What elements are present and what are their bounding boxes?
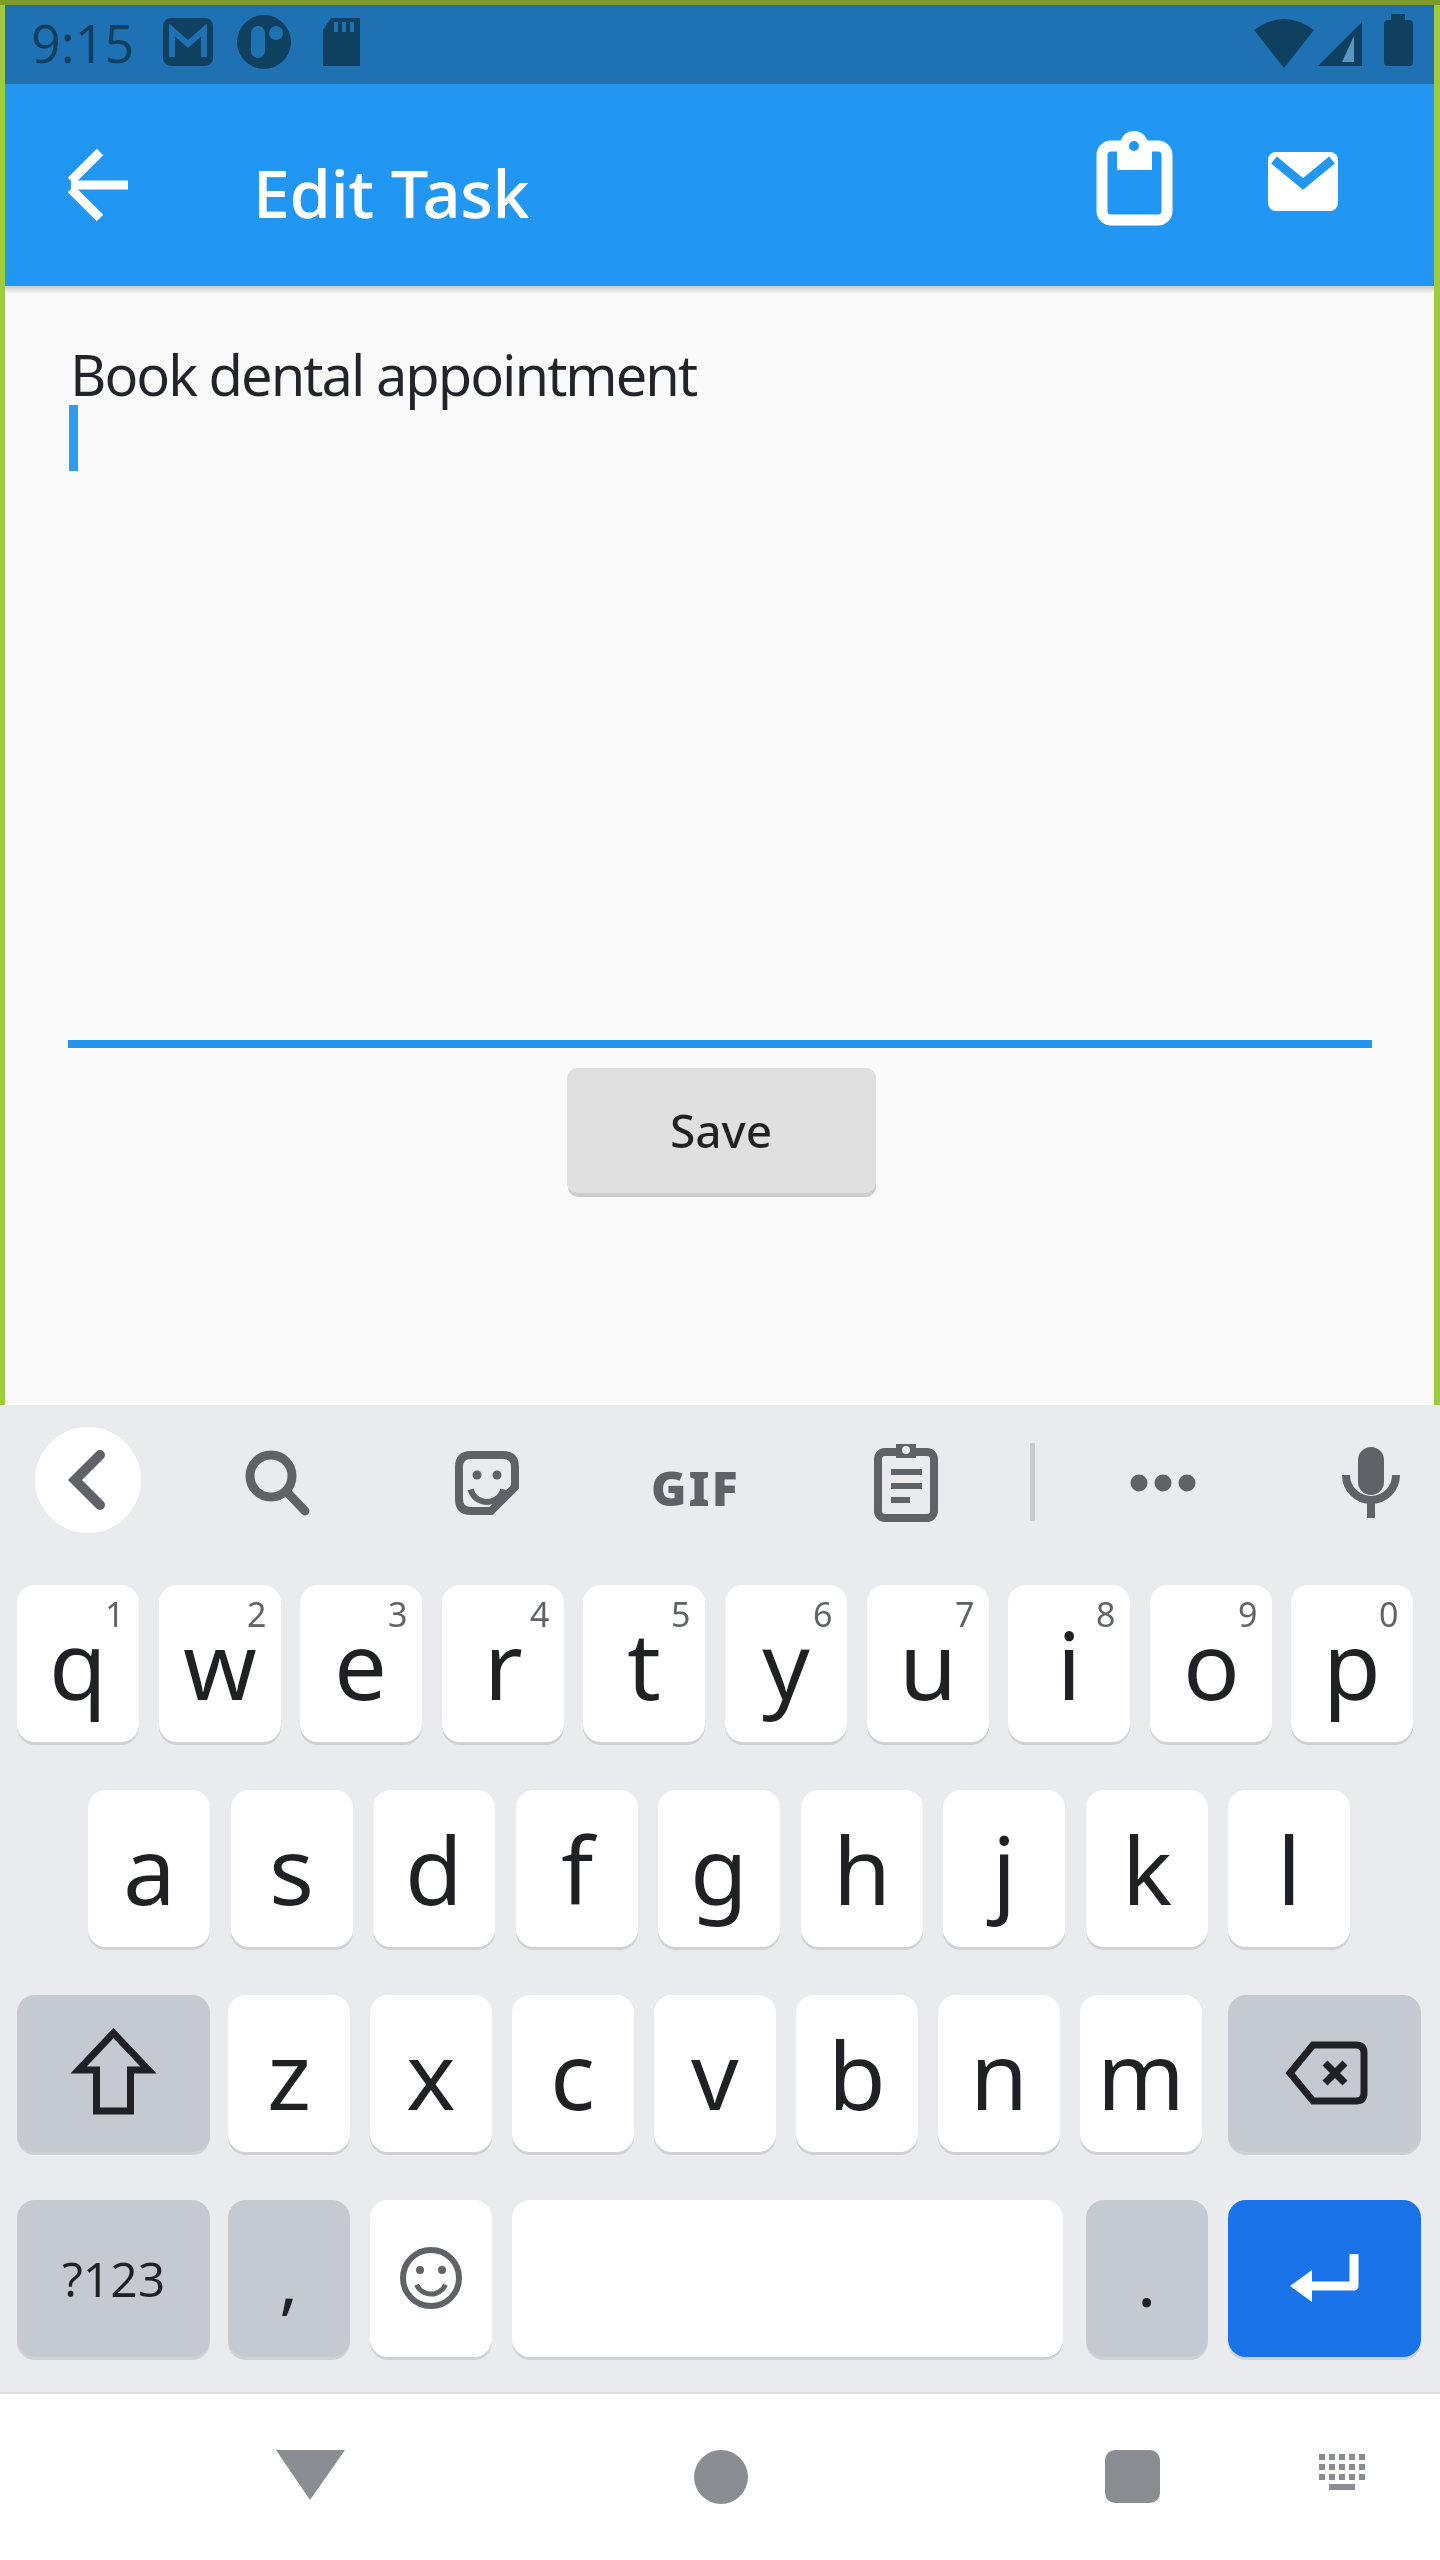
button[interactable]: v [654, 1995, 776, 2152]
button[interactable] [17, 1995, 210, 2152]
staticText: f [561, 1805, 594, 1933]
button[interactable] [47, 133, 151, 237]
button[interactable] [1228, 2200, 1421, 2357]
staticText: y [762, 1600, 810, 1728]
staticText: 8 [1096, 1591, 1116, 1637]
button[interactable] [370, 2200, 492, 2357]
staticText: v [691, 2010, 739, 2138]
button[interactable] [446, 1442, 526, 1522]
button[interactable]: o [1150, 1585, 1272, 1742]
button[interactable]: j [943, 1790, 1065, 1947]
button[interactable]: k [1086, 1790, 1208, 1947]
staticText: 6 [813, 1591, 833, 1637]
button[interactable] [266, 2440, 356, 2504]
staticText: 4 [530, 1591, 550, 1637]
staticText: r [484, 1600, 523, 1728]
staticText: e [334, 1600, 388, 1728]
staticText: g [690, 1805, 748, 1933]
button[interactable]: m [1080, 1995, 1202, 2152]
staticText: 9 [1238, 1591, 1258, 1637]
button[interactable]: w [159, 1585, 281, 1742]
staticText: m [1097, 2010, 1185, 2138]
button[interactable]: r [442, 1585, 564, 1742]
button[interactable] [1082, 129, 1186, 233]
button[interactable] [865, 1438, 949, 1528]
staticText: 3 [388, 1591, 408, 1637]
button[interactable]: h [801, 1790, 923, 1947]
button[interactable] [1330, 1438, 1412, 1528]
staticText: 2 [247, 1591, 267, 1637]
staticText: GIF [651, 1455, 740, 1511]
button[interactable]: y [725, 1585, 847, 1742]
staticText: n [970, 2010, 1029, 2138]
staticText: q [49, 1600, 107, 1728]
staticText: 7 [955, 1591, 975, 1637]
button[interactable]: g [658, 1790, 780, 1947]
button[interactable]: l [1228, 1790, 1350, 1947]
staticText: c [550, 2010, 596, 2138]
button[interactable]: p [1291, 1585, 1413, 1742]
staticText: Book dental appointment [70, 336, 697, 412]
button[interactable]: , [228, 2200, 350, 2357]
button[interactable]: x [370, 1995, 492, 2152]
button[interactable]: e [300, 1585, 422, 1742]
staticText: l [1277, 1805, 1302, 1933]
button[interactable] [1100, 2445, 1164, 2509]
staticText: , [279, 2230, 299, 2328]
button[interactable]: q [17, 1585, 139, 1742]
staticText: Edit Task [253, 147, 530, 237]
staticText: o [1183, 1600, 1240, 1728]
button[interactable]: GIF [645, 1455, 745, 1511]
button[interactable]: i [1008, 1585, 1130, 1742]
staticText: s [269, 1805, 315, 1933]
button[interactable]: a [88, 1790, 210, 1947]
button[interactable] [686, 2442, 756, 2512]
button[interactable]: . [1086, 2200, 1208, 2357]
button[interactable]: f [516, 1790, 638, 1947]
staticText: i [1057, 1600, 1082, 1728]
staticText: j [992, 1805, 1017, 1933]
staticText: 5 [671, 1591, 691, 1637]
staticText: t [627, 1600, 661, 1728]
button[interactable]: c [512, 1995, 634, 2152]
button[interactable]: Save [567, 1068, 876, 1193]
button[interactable]: z [228, 1995, 350, 2152]
staticText: z [267, 2010, 312, 2138]
staticText: ?123 [62, 2246, 166, 2311]
staticText: . [1137, 2230, 1157, 2328]
button[interactable]: ?123 [17, 2200, 210, 2357]
staticText: h [833, 1805, 892, 1933]
staticText: p [1323, 1600, 1381, 1728]
staticText: k [1122, 1805, 1173, 1933]
button[interactable]: Book dental appointment [0, 286, 1440, 1405]
button[interactable] [1313, 2448, 1373, 2500]
staticText: b [828, 2010, 886, 2138]
staticText: 1 [105, 1591, 125, 1637]
button[interactable] [235, 1442, 315, 1522]
staticText: a [123, 1805, 176, 1933]
staticText: w [183, 1600, 257, 1728]
button[interactable]: n [938, 1995, 1060, 2152]
button[interactable]: d [373, 1790, 495, 1947]
button[interactable]: s [231, 1790, 353, 1947]
button[interactable] [1228, 1995, 1421, 2152]
button[interactable]: t [583, 1585, 705, 1742]
staticText: Save [670, 1099, 773, 1162]
staticText: d [405, 1805, 463, 1933]
button[interactable] [35, 1427, 141, 1533]
button[interactable]: b [796, 1995, 918, 2152]
button[interactable] [1120, 1442, 1206, 1522]
staticText: x [406, 2010, 456, 2138]
button[interactable]: u [867, 1585, 989, 1742]
staticText: 0 [1379, 1591, 1399, 1637]
staticText: 9:15 [31, 7, 135, 78]
button[interactable] [1251, 129, 1355, 233]
staticText: u [899, 1600, 958, 1728]
